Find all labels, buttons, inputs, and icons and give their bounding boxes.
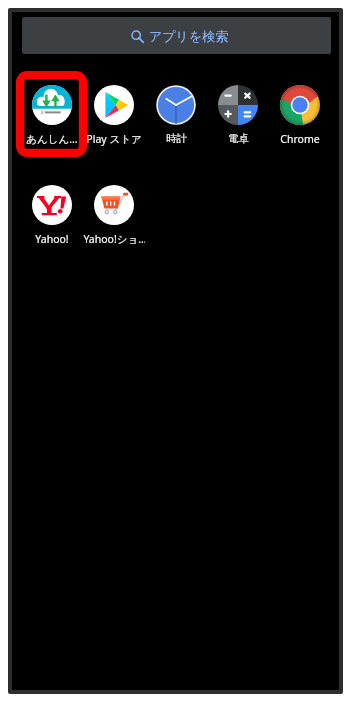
staticText: Yahoo! — [35, 232, 69, 246]
button[interactable]: 時計 — [145, 85, 207, 145]
button[interactable]: Search — [22, 17, 331, 54]
button[interactable]: 電卓 — [207, 85, 269, 145]
staticText: 時計 — [166, 132, 187, 145]
button[interactable]: あんしん… — [21, 85, 83, 146]
staticText: Play ストア — [86, 132, 142, 146]
staticText: Chrome — [280, 132, 320, 146]
button[interactable]: Chrome — [269, 85, 331, 146]
button[interactable]: Yahoo!ショ… — [83, 185, 145, 246]
button[interactable]: Yahoo! — [21, 185, 83, 246]
staticText: 電卓 — [228, 132, 249, 145]
other: Search — [131, 30, 144, 43]
staticText: アプリを検索 — [149, 28, 229, 44]
staticText: Yahoo!ショ… — [83, 232, 145, 246]
staticText: あんしん… — [26, 132, 78, 146]
button[interactable]: Play ストア — [83, 85, 145, 146]
